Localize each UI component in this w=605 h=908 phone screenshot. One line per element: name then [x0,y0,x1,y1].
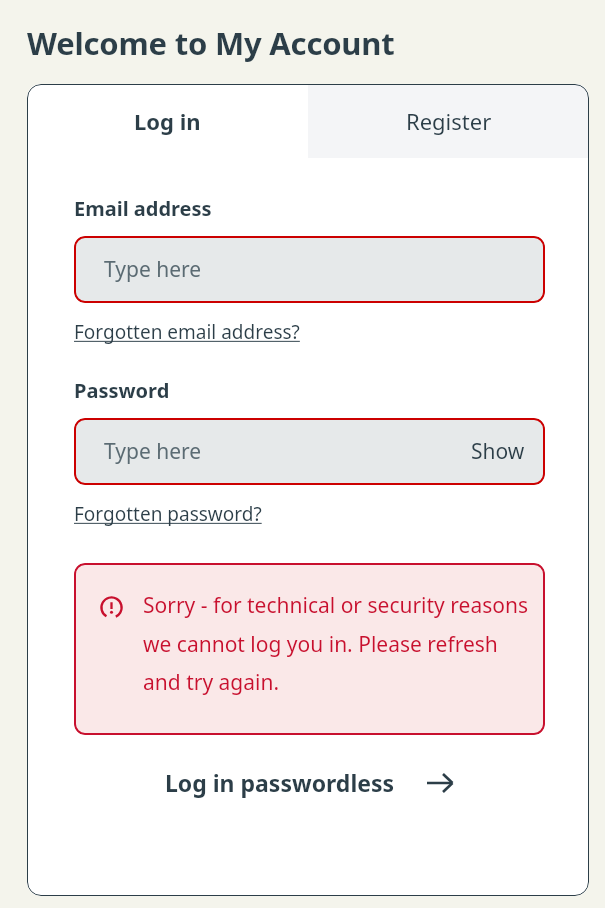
other: Error [100,596,123,619]
button[interactable]: Log in passwordless [74,767,545,798]
staticText: Type here [104,255,202,284]
button[interactable]: Forgotten password? [74,501,262,527]
button[interactable]: Forgotten email address? [74,319,300,345]
staticText: Email address [74,195,212,222]
staticText: Welcome to My Account [27,22,395,64]
staticText: Log in passwordless [165,767,395,798]
staticText: Sorry - for technical or security reason… [143,591,529,696]
button[interactable]: Register [308,84,589,158]
button[interactable]: Log in [27,84,308,158]
staticText: Password [74,377,170,404]
button[interactable]: Show [471,437,525,466]
staticText: Log in [134,106,201,136]
staticText: Type here [104,437,202,466]
button[interactable]: Type here [74,236,545,303]
button[interactable]: Type here [74,418,545,485]
staticText: Register [406,106,492,136]
